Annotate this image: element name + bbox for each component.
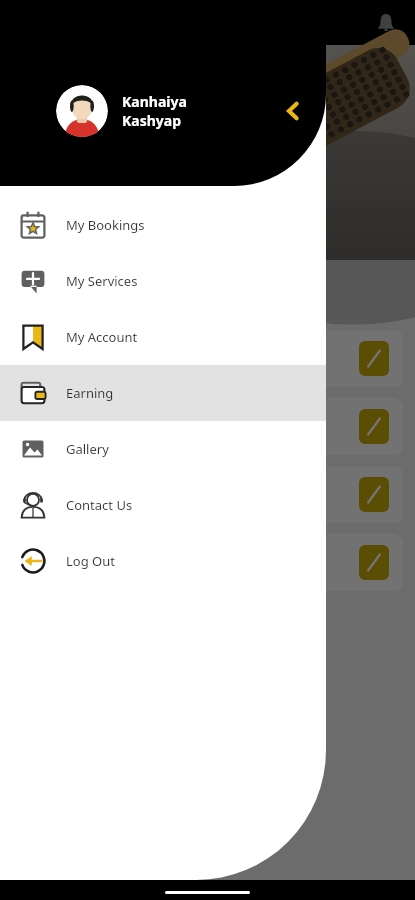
staticText: My Account xyxy=(66,328,138,346)
button[interactable]: Edit xyxy=(359,477,389,512)
button[interactable]: Edit xyxy=(12,466,403,523)
staticText: Earning xyxy=(66,384,114,402)
button[interactable]: Notifications xyxy=(375,12,397,34)
button[interactable]: Close menu xyxy=(278,96,308,126)
button[interactable]: My Services xyxy=(0,253,326,309)
staticText: Gallery xyxy=(66,440,109,458)
button[interactable]: Log Out xyxy=(0,533,326,589)
button[interactable]: Gallery xyxy=(0,421,326,477)
button[interactable]: Edit xyxy=(12,398,403,455)
button[interactable]: Edit xyxy=(359,341,389,376)
button[interactable]: Edit xyxy=(359,409,389,444)
button[interactable]: Kanhaiya xyxy=(56,85,308,137)
staticText: Log Out xyxy=(66,552,115,570)
button[interactable]: My Account xyxy=(0,309,326,365)
button[interactable]: My Bookings xyxy=(0,197,326,253)
staticText: Kanhaiya xyxy=(122,92,187,111)
button[interactable]: Contact Us xyxy=(0,477,326,533)
staticText: Kashyap xyxy=(122,111,182,130)
button[interactable]: Edit xyxy=(359,545,389,580)
staticText: Contact Us xyxy=(66,496,133,514)
staticText: My Bookings xyxy=(66,216,145,234)
button[interactable]: Edit xyxy=(12,534,403,591)
staticText: My Services xyxy=(66,272,138,290)
button[interactable]: Edit xyxy=(12,330,403,387)
button[interactable]: Earning xyxy=(0,365,326,421)
